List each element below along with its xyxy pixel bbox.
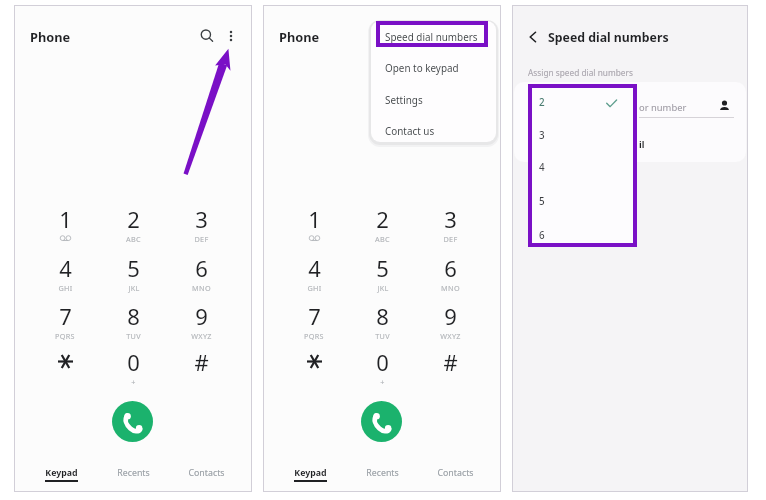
button[interactable]: Open to keypad <box>371 55 496 79</box>
staticText: 5 <box>127 253 140 283</box>
button[interactable]: 6 <box>528 223 637 245</box>
button[interactable]: 0 <box>365 347 399 387</box>
staticText: GHI <box>58 283 73 293</box>
staticText: Contact us <box>385 124 435 137</box>
staticText: TUV <box>375 331 390 341</box>
button[interactable]: 3 <box>433 204 467 244</box>
staticText: 4 <box>59 253 72 283</box>
button[interactable]: Contact us <box>371 118 496 142</box>
button[interactable]: Search <box>193 22 221 50</box>
button[interactable]: 3 <box>184 204 218 244</box>
staticText: 4 <box>308 253 321 283</box>
staticText: GHI <box>307 283 322 293</box>
staticText: 3 <box>195 204 208 234</box>
button[interactable]: Keypad <box>29 467 93 491</box>
staticText: 3 <box>539 129 545 142</box>
staticText: 9 <box>195 301 208 331</box>
button[interactable]: 2 <box>365 204 399 244</box>
staticText: MNO <box>441 283 460 293</box>
button[interactable]: Choose contact <box>716 97 732 113</box>
staticText: 2 <box>376 204 389 234</box>
button[interactable]: Recents <box>101 467 165 491</box>
staticText: ABC <box>126 234 141 244</box>
staticText: 1 <box>308 204 321 234</box>
button[interactable]: Speed dial numbers <box>371 24 496 48</box>
button[interactable]: 6 <box>184 253 218 293</box>
staticText: Assign speed dial numbers <box>528 67 633 78</box>
button[interactable]: Contacts <box>174 467 238 491</box>
button[interactable] <box>297 347 331 387</box>
staticText: TUV <box>126 331 141 341</box>
button[interactable]: 1 <box>297 204 331 244</box>
button[interactable]: Contacts <box>423 467 487 491</box>
staticText: 3 <box>444 204 457 234</box>
staticText: MNO <box>192 283 211 293</box>
staticText: 6 <box>195 253 208 283</box>
staticText: 4 <box>539 161 545 174</box>
staticText: or number <box>639 101 687 114</box>
button[interactable]: 7 <box>297 301 331 341</box>
staticText: 5 <box>376 253 389 283</box>
staticText: Phone <box>30 28 71 45</box>
staticText: 1 <box>59 204 72 234</box>
staticText: 0 <box>376 347 389 377</box>
staticText: 6 <box>539 229 545 242</box>
staticText: + <box>131 377 136 387</box>
button[interactable]: 5 <box>365 253 399 293</box>
staticText: Speed dial numbers <box>385 30 478 43</box>
staticText: 2 <box>127 204 140 234</box>
staticText: Recents <box>117 467 150 479</box>
staticText: # <box>194 347 209 377</box>
staticText: JKL <box>377 283 389 293</box>
staticText: Open to keypad <box>385 61 459 74</box>
staticText: 2 <box>539 96 545 109</box>
staticText: 8 <box>376 301 389 331</box>
button[interactable]: 8 <box>365 301 399 341</box>
staticText: DEF <box>194 234 209 244</box>
button[interactable]: 3 <box>528 123 637 145</box>
button[interactable]: 8 <box>116 301 150 341</box>
button[interactable]: 6 <box>433 253 467 293</box>
button[interactable]: 7 <box>48 301 82 341</box>
button[interactable]: More options <box>217 22 245 50</box>
button[interactable]: Back <box>521 25 545 49</box>
button[interactable]: 5 <box>116 253 150 293</box>
staticText: il <box>639 138 645 150</box>
staticText: Phone <box>279 28 320 45</box>
staticText: JKL <box>128 283 140 293</box>
button[interactable]: Call <box>361 401 402 442</box>
button[interactable] <box>48 347 82 387</box>
staticText: 6 <box>444 253 457 283</box>
staticText: Keypad <box>294 467 327 479</box>
staticText: 7 <box>59 301 72 331</box>
button[interactable]: Call <box>112 401 153 442</box>
staticText: 7 <box>308 301 321 331</box>
staticText: PQRS <box>304 331 324 341</box>
button[interactable]: 9 <box>184 301 218 341</box>
button[interactable]: 1 <box>48 204 82 244</box>
button[interactable]: 0 <box>116 347 150 387</box>
button[interactable]: 2 <box>116 204 150 244</box>
staticText: Recents <box>366 467 399 479</box>
button[interactable]: 4 <box>528 155 637 177</box>
staticText: ABC <box>375 234 390 244</box>
button[interactable]: 2 <box>528 90 637 112</box>
button[interactable]: Keypad <box>278 467 342 491</box>
button[interactable]: Recents <box>350 467 414 491</box>
button[interactable]: Settings <box>371 87 496 111</box>
staticText: 8 <box>127 301 140 331</box>
staticText: Contacts <box>437 467 474 479</box>
staticText: DEF <box>443 234 458 244</box>
button[interactable]: 4 <box>297 253 331 293</box>
staticText: 9 <box>444 301 457 331</box>
button[interactable]: # <box>433 347 467 387</box>
button[interactable]: 4 <box>48 253 82 293</box>
button[interactable]: # <box>184 347 218 387</box>
button[interactable]: 9 <box>433 301 467 341</box>
staticText: WXYZ <box>440 331 461 341</box>
staticText: PQRS <box>55 331 75 341</box>
staticText: Contacts <box>188 467 225 479</box>
staticText: 0 <box>127 347 140 377</box>
staticText: Settings <box>385 93 423 106</box>
button[interactable]: 5 <box>528 189 637 211</box>
